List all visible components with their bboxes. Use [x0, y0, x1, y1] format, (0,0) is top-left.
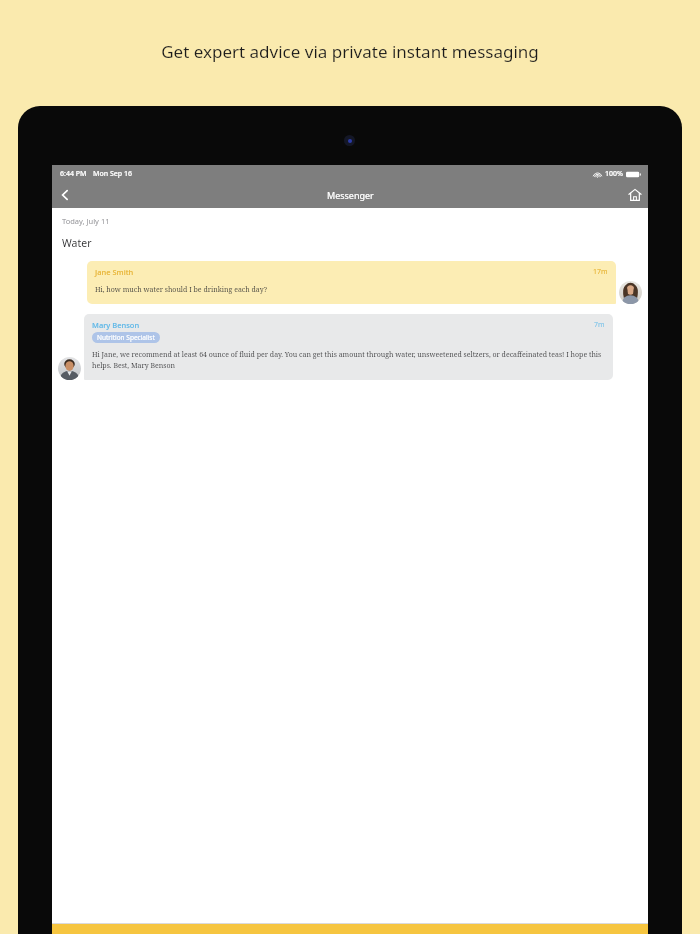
button[interactable]: Home [622, 182, 648, 208]
staticText: 6:44 PM [60, 169, 87, 179]
staticText: Mon Sep 16 [93, 169, 132, 179]
staticText: 7m [594, 320, 605, 330]
button[interactable]: Jane Smith [87, 261, 642, 304]
staticText: 17m [593, 267, 608, 277]
staticText: Jane Smith [95, 267, 134, 277]
staticText: Nutrition Specialist [97, 333, 155, 342]
staticText: Water [62, 236, 92, 250]
staticText: Hi Jane, we recommend at least 64 ounce … [92, 350, 605, 370]
staticText: Get expert advice via private instant me… [0, 40, 700, 63]
staticText: Mary Benson [92, 320, 140, 330]
staticText: Hi, how much water should I be drinking … [95, 285, 267, 295]
staticText: Messenger [327, 189, 374, 201]
button[interactable]: Back [52, 182, 78, 208]
staticText: Today, July 11 [62, 216, 110, 226]
button[interactable]: Mary Benson [58, 314, 613, 380]
staticText: 100% [605, 169, 623, 179]
